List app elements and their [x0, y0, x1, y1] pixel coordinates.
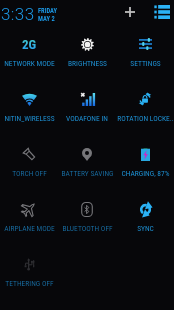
staticText: 2G — [22, 37, 37, 52]
button[interactable]: Add tile — [121, 3, 139, 21]
staticText: ROTATION LOCKE.. — [117, 114, 174, 123]
staticText: TORCH OFF — [12, 169, 47, 178]
button[interactable]: NITIN_WIRELESS — [0, 82, 58, 137]
button[interactable]: SETTINGS — [116, 27, 174, 82]
staticText: MAY 2 — [38, 15, 55, 23]
button[interactable]: ROTATION LOCKE.. — [116, 82, 174, 137]
staticText: NITIN_WIRELESS — [4, 114, 55, 123]
button[interactable]: BATTERY SAVING — [58, 137, 116, 192]
staticText: NETWORK MODE — [4, 59, 55, 68]
staticText: AIRPLANE MODE — [4, 224, 55, 233]
staticText: VODAFONE IN — [66, 114, 108, 123]
staticText: BLUETOOTH OFF — [62, 224, 113, 233]
button[interactable]: TETHERING OFF — [0, 247, 58, 302]
staticText: SETTINGS — [130, 59, 161, 68]
button[interactable]: AIRPLANE MODE — [0, 192, 58, 247]
button[interactable]: BLUETOOTH OFF — [58, 192, 116, 247]
button[interactable]: 2G — [0, 27, 58, 82]
staticText: BATTERY SAVING — [61, 169, 114, 178]
button[interactable]: Open quick settings list — [153, 3, 171, 21]
button[interactable]: SYNC — [116, 192, 174, 247]
button[interactable]: BRIGHTNESS — [58, 27, 116, 82]
staticText: TETHERING OFF — [5, 279, 54, 288]
button[interactable]: CHARGING, 87% — [116, 137, 174, 192]
staticText: BRIGHTNESS — [68, 59, 107, 68]
staticText: 3:33 — [1, 4, 35, 24]
staticText: SYNC — [137, 224, 154, 233]
staticText: FRIDAY — [38, 7, 57, 15]
staticText: CHARGING, 87% — [121, 169, 170, 178]
button[interactable]: TORCH OFF — [0, 137, 58, 192]
button[interactable]: VODAFONE IN — [58, 82, 116, 137]
